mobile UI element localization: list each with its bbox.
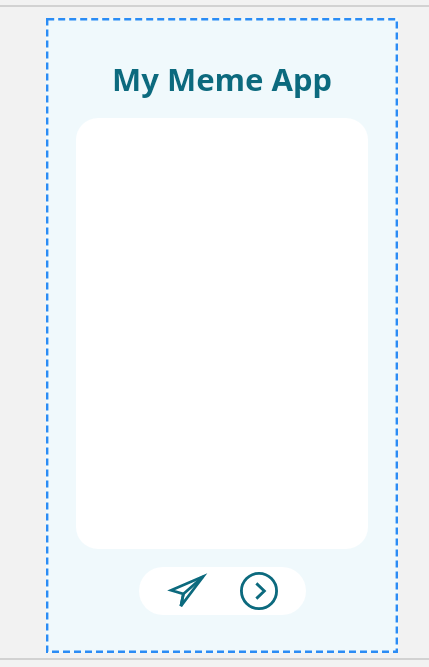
button[interactable]: Next	[235, 567, 283, 615]
staticText: My Meme App	[46, 58, 398, 100]
button[interactable]: Send	[163, 567, 211, 615]
